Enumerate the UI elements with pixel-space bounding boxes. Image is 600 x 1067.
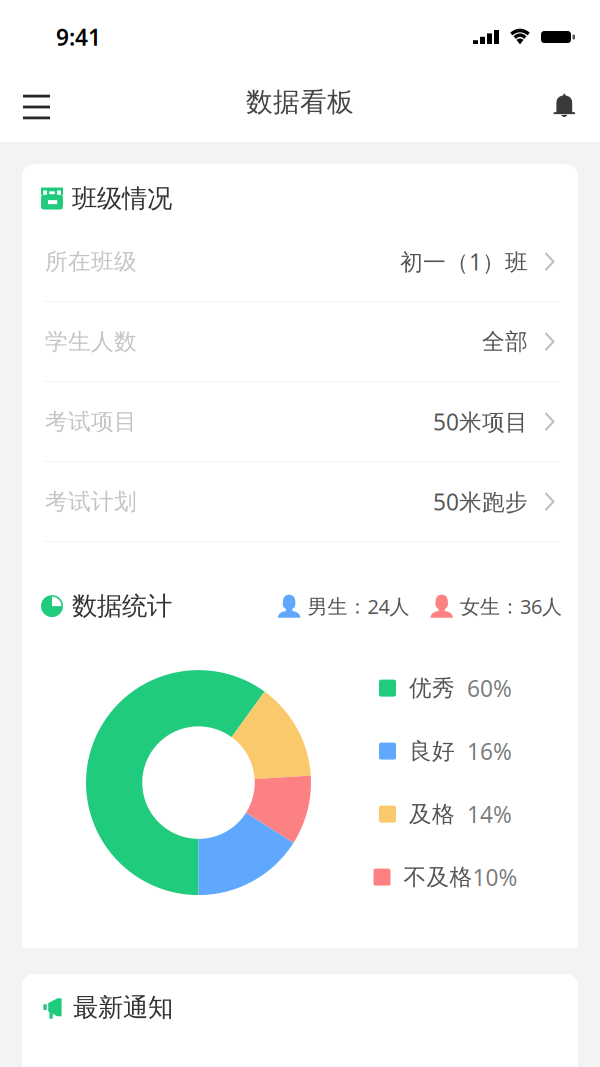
- staticText: 所在班级: [45, 248, 137, 275]
- button[interactable]: 考试项目: [22, 382, 578, 461]
- staticText: 16%: [467, 736, 512, 766]
- staticText: 50米跑步: [433, 487, 528, 517]
- staticText: 最新通知: [73, 992, 173, 1023]
- button[interactable]: 所在班级: [22, 222, 578, 301]
- staticText: 50米项目: [433, 407, 528, 437]
- staticText: 60%: [467, 673, 512, 703]
- staticText: 考试计划: [45, 488, 137, 515]
- button[interactable]: 学生人数: [22, 302, 578, 381]
- staticText: 优秀: [409, 674, 455, 702]
- staticText: 10%: [472, 862, 517, 892]
- button[interactable]: 考试计划: [22, 462, 578, 541]
- staticText: 数据看板: [246, 86, 354, 118]
- staticText: 初一（1）班: [400, 247, 528, 277]
- staticText: 学生人数: [45, 328, 137, 355]
- staticText: 及格: [409, 800, 455, 828]
- staticText: 班级情况: [72, 183, 172, 214]
- staticText: 全部: [482, 328, 528, 355]
- staticText: 男生：24人: [307, 593, 409, 619]
- staticText: 考试项目: [45, 408, 137, 435]
- button[interactable]: Menu: [0, 73, 70, 131]
- staticText: 良好: [409, 737, 455, 765]
- staticText: 女生：36人: [460, 593, 562, 619]
- staticText: 数据统计: [72, 591, 172, 622]
- button[interactable]: Notifications: [533, 73, 600, 131]
- staticText: 不及格: [403, 863, 472, 891]
- staticText: 14%: [467, 799, 512, 829]
- staticText: 9:41: [56, 22, 101, 52]
